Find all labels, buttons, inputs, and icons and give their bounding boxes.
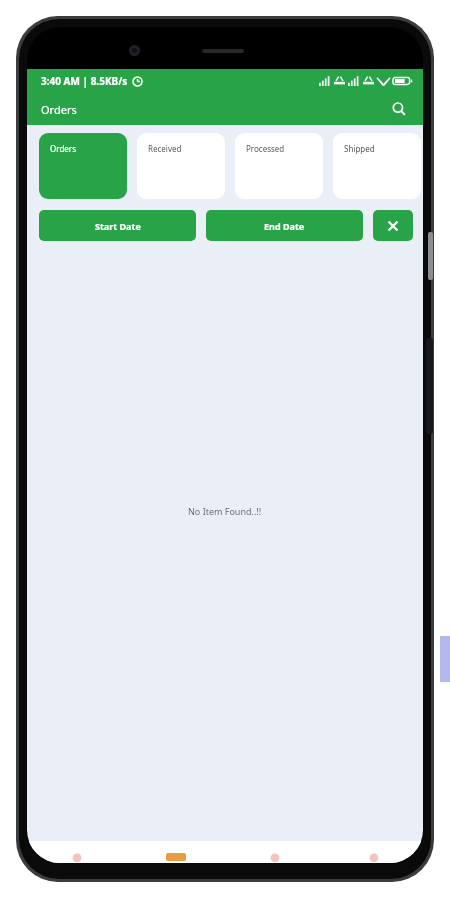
button[interactable]: Navigation tab xyxy=(324,841,423,863)
staticText: 3:40 AM | 8.5KB/s xyxy=(41,74,128,88)
staticText: Received xyxy=(148,143,182,154)
staticText: Processed xyxy=(246,143,285,154)
staticText: Orders xyxy=(50,143,76,154)
button[interactable]: Processed xyxy=(235,133,323,199)
button[interactable]: End Date xyxy=(206,210,363,241)
button[interactable]: Shipped xyxy=(333,133,421,199)
button[interactable]: Navigation tab xyxy=(225,841,324,863)
staticText: Orders xyxy=(41,102,77,117)
staticText: Shipped xyxy=(344,143,375,154)
button[interactable]: Start Date xyxy=(39,210,196,241)
button[interactable]: Received xyxy=(137,133,225,199)
button[interactable]: Clear date filter xyxy=(373,210,413,241)
staticText: Start Date xyxy=(95,220,141,232)
button[interactable]: Orders xyxy=(39,133,127,199)
staticText: End Date xyxy=(264,220,305,232)
staticText: No Item Found..!! xyxy=(188,505,262,517)
button[interactable]: Navigation tab xyxy=(27,841,126,863)
button[interactable]: Navigation tab xyxy=(126,841,225,863)
button[interactable]: Search xyxy=(385,95,413,123)
